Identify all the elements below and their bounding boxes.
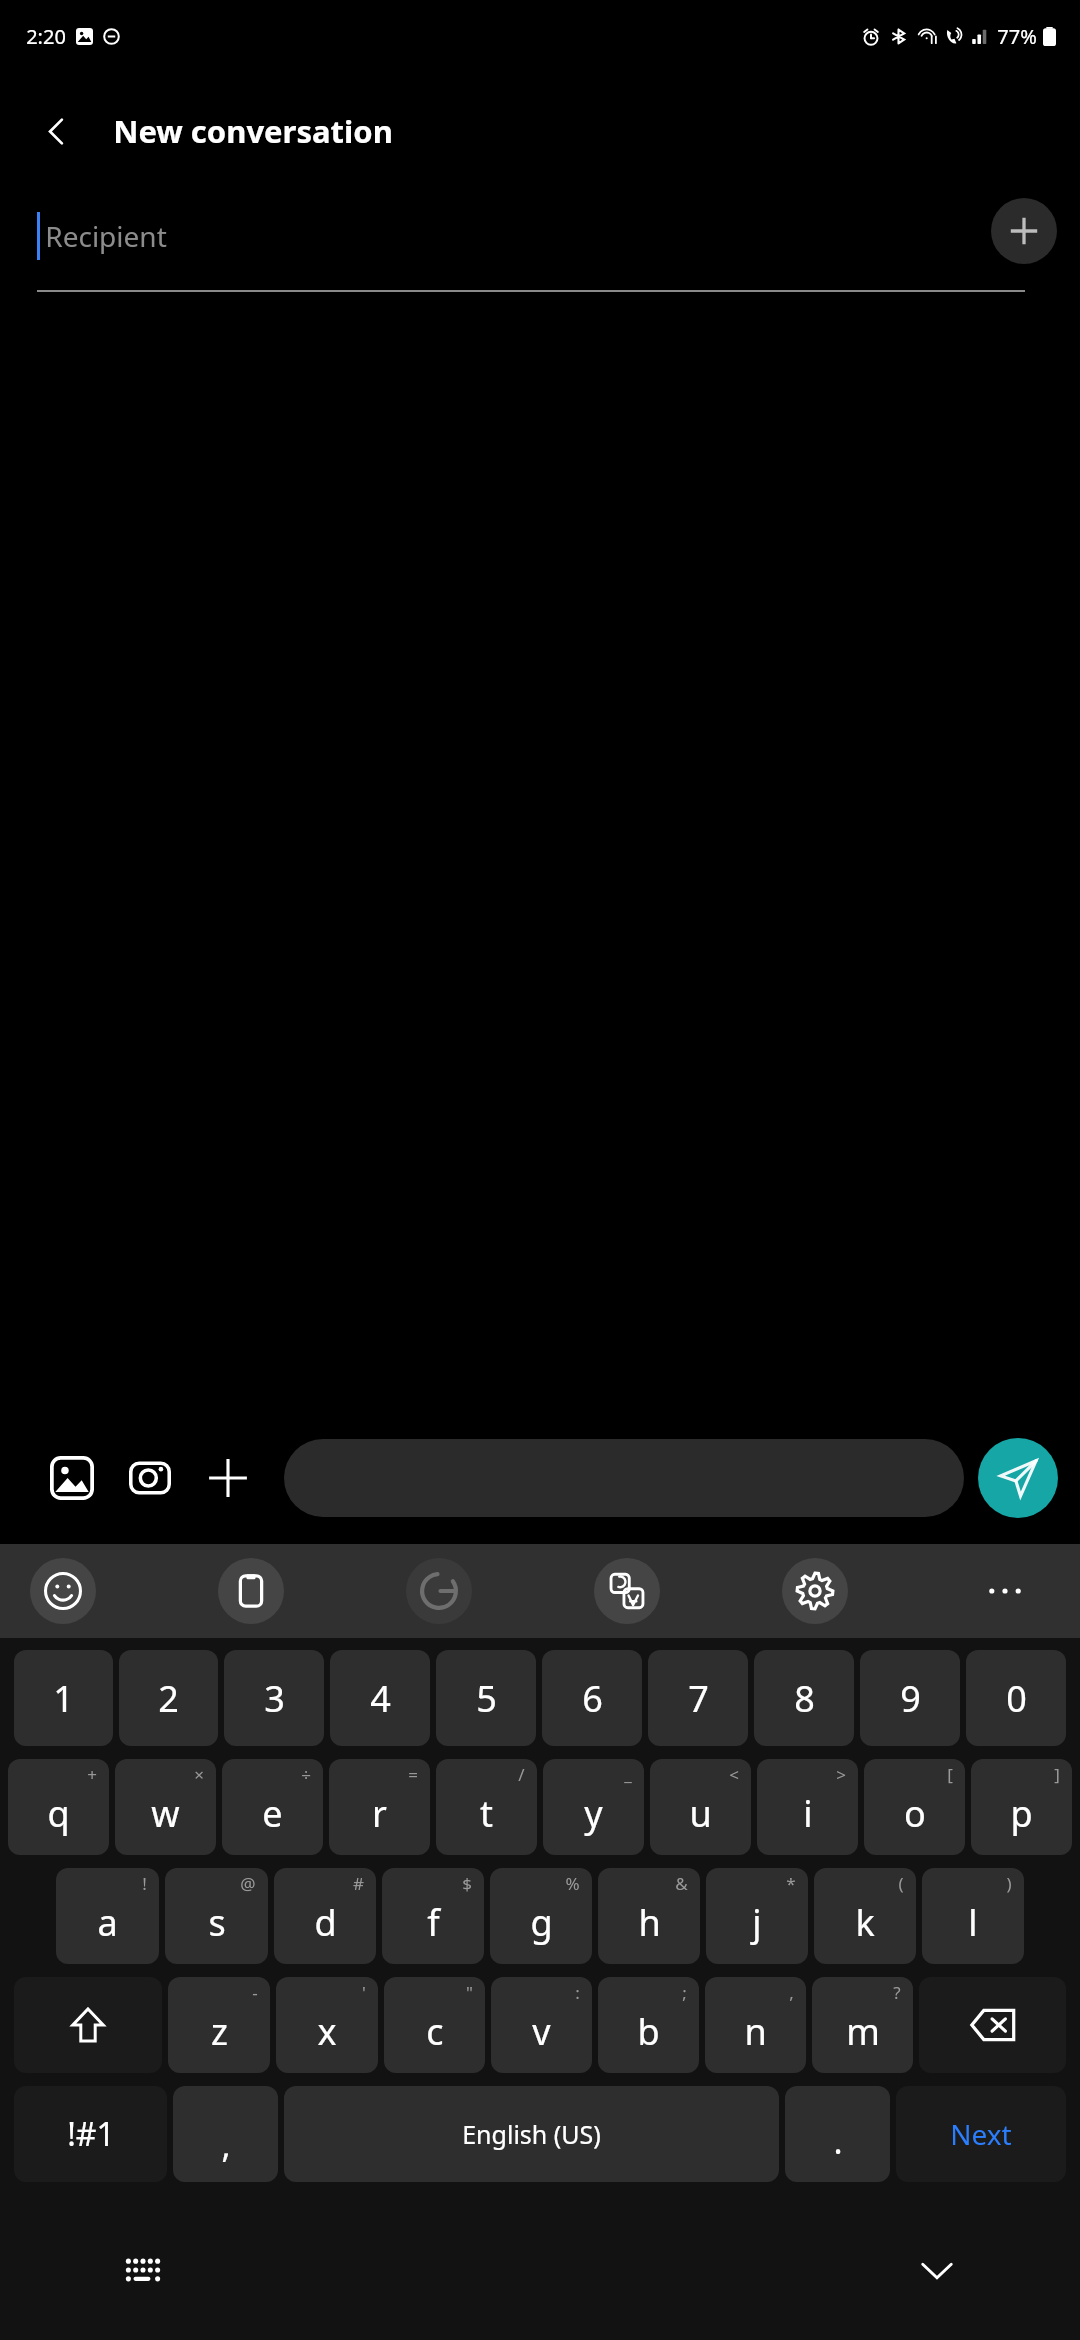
staticText: o <box>904 1789 926 1838</box>
button[interactable]: 7 <box>648 1650 748 1746</box>
staticText: v <box>532 2007 551 2056</box>
button[interactable]: Keyboard settings <box>782 1558 848 1624</box>
button[interactable]: 4 <box>330 1650 430 1746</box>
button[interactable]: % <box>490 1868 592 1964</box>
staticText: h <box>638 1898 661 1947</box>
button[interactable]: : <box>491 1977 592 2073</box>
staticText: ) <box>1006 1872 1012 1895</box>
staticText: Recipient <box>45 217 167 255</box>
staticText: 9 <box>900 1674 921 1723</box>
button[interactable]: Hide keyboard <box>902 2235 972 2305</box>
staticText: Next <box>950 2115 1012 2153</box>
staticText: - <box>252 1981 258 2004</box>
staticText: > <box>836 1763 846 1786</box>
button[interactable]: < <box>650 1759 751 1855</box>
button[interactable]: ) <box>922 1868 1024 1964</box>
button[interactable]: ' <box>276 1977 378 2073</box>
button[interactable]: . <box>785 2086 890 2182</box>
button[interactable]: [ <box>864 1759 965 1855</box>
button[interactable]: Backspace <box>919 1977 1066 2073</box>
button[interactable]: 6 <box>542 1650 642 1746</box>
staticText: , <box>789 1981 794 2004</box>
button[interactable]: ? <box>812 1977 913 2073</box>
button[interactable]: = <box>329 1759 430 1855</box>
button[interactable]: Attach <box>192 1442 264 1514</box>
staticText: j <box>752 1898 762 1947</box>
button[interactable]: 0 <box>966 1650 1066 1746</box>
button[interactable]: ; <box>598 1977 699 2073</box>
button[interactable]: More options <box>970 1556 1040 1626</box>
button[interactable]: ( <box>814 1868 916 1964</box>
staticText: i <box>803 1789 813 1838</box>
button[interactable]: Send <box>978 1438 1058 1518</box>
button[interactable]: Clipboard <box>218 1558 284 1624</box>
staticText: < <box>729 1763 739 1786</box>
staticText: 3 <box>264 1674 285 1723</box>
staticText: = <box>408 1763 418 1786</box>
button[interactable]: Message input <box>284 1439 964 1517</box>
button[interactable]: Change keyboard <box>108 2235 178 2305</box>
button[interactable]: Next <box>896 2086 1066 2182</box>
staticText: ( <box>898 1872 904 1895</box>
staticText: 8 <box>794 1674 815 1723</box>
staticText: e <box>262 1789 283 1838</box>
button[interactable]: - <box>168 1977 270 2073</box>
staticText: 1 <box>53 1674 74 1723</box>
button[interactable]: Camera <box>114 1442 186 1514</box>
staticText: ? <box>893 1981 901 2004</box>
button[interactable]: $ <box>382 1868 484 1964</box>
staticText: * <box>786 1872 796 1895</box>
staticText: " <box>466 1981 473 2004</box>
staticText: @ <box>240 1872 256 1895</box>
button[interactable]: + <box>8 1759 109 1855</box>
button[interactable]: 8 <box>754 1650 854 1746</box>
staticText: _ <box>624 1763 632 1786</box>
staticText: / <box>518 1763 525 1786</box>
button[interactable]: 9 <box>860 1650 960 1746</box>
button[interactable]: & <box>598 1868 700 1964</box>
button[interactable]: / <box>436 1759 537 1855</box>
staticText: !#1 <box>67 2112 115 2156</box>
staticText: k <box>855 1898 875 1947</box>
button[interactable]: Back <box>26 101 86 161</box>
staticText: b <box>637 2007 660 2056</box>
button[interactable]: Add recipient <box>991 198 1057 264</box>
button[interactable]: 2 <box>119 1650 218 1746</box>
staticText: . <box>833 2118 843 2164</box>
button[interactable]: × <box>115 1759 216 1855</box>
button[interactable]: @ <box>165 1868 268 1964</box>
button[interactable]: , <box>173 2086 278 2182</box>
staticText: ' <box>362 1981 366 2004</box>
staticText: 77% <box>997 23 1037 50</box>
staticText: & <box>675 1872 688 1895</box>
staticText: # <box>353 1872 364 1895</box>
button[interactable]: ] <box>971 1759 1072 1855</box>
button[interactable]: 1 <box>14 1650 113 1746</box>
button[interactable]: !#1 <box>14 2086 167 2182</box>
button[interactable]: Gallery <box>36 1442 108 1514</box>
button[interactable]: " <box>384 1977 485 2073</box>
button[interactable]: 5 <box>436 1650 536 1746</box>
button[interactable]: > <box>757 1759 858 1855</box>
button[interactable]: Shift <box>14 1977 162 2073</box>
staticText: n <box>744 2007 767 2056</box>
button[interactable]: ÷ <box>222 1759 323 1855</box>
button[interactable]: English (US) <box>284 2086 779 2182</box>
button[interactable]: * <box>706 1868 808 1964</box>
button[interactable]: Translate <box>594 1558 660 1624</box>
button[interactable]: _ <box>543 1759 644 1855</box>
button[interactable]: Grammar check <box>406 1558 472 1624</box>
staticText: 4 <box>370 1674 391 1723</box>
staticText: 5 <box>476 1674 497 1723</box>
staticText: × <box>194 1763 204 1786</box>
button[interactable]: , <box>705 1977 806 2073</box>
staticText: f <box>427 1898 440 1947</box>
button[interactable]: ! <box>56 1868 159 1964</box>
button[interactable]: 3 <box>224 1650 324 1746</box>
button[interactable]: Emoji <box>30 1558 96 1624</box>
staticText: m <box>846 2007 880 2056</box>
staticText: t <box>480 1789 493 1838</box>
staticText: r <box>372 1789 387 1838</box>
staticText: w <box>151 1789 180 1838</box>
button[interactable]: # <box>274 1868 376 1964</box>
